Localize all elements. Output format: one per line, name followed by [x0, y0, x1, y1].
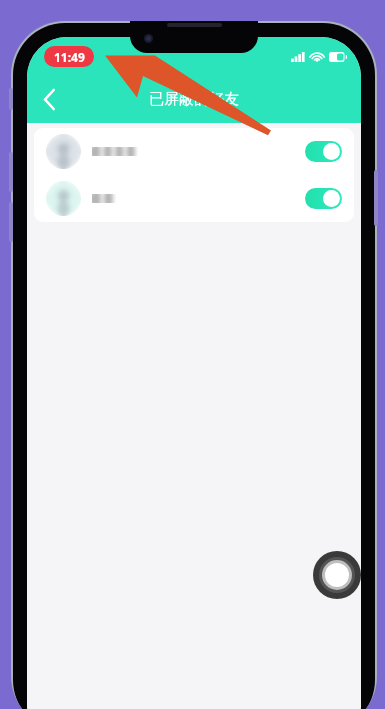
button[interactable]: Back — [27, 77, 71, 121]
button[interactable]: Stop screen recording — [313, 551, 361, 599]
button[interactable]: Blocked toggle, on — [34, 128, 354, 175]
staticText: 已屏蔽的好友 — [149, 90, 239, 109]
button[interactable]: Blocked toggle, on — [305, 141, 342, 162]
staticText: 11:49 — [54, 49, 85, 65]
button[interactable]: Blocked toggle, on — [305, 188, 342, 209]
button[interactable]: Blocked toggle, on — [34, 175, 354, 222]
